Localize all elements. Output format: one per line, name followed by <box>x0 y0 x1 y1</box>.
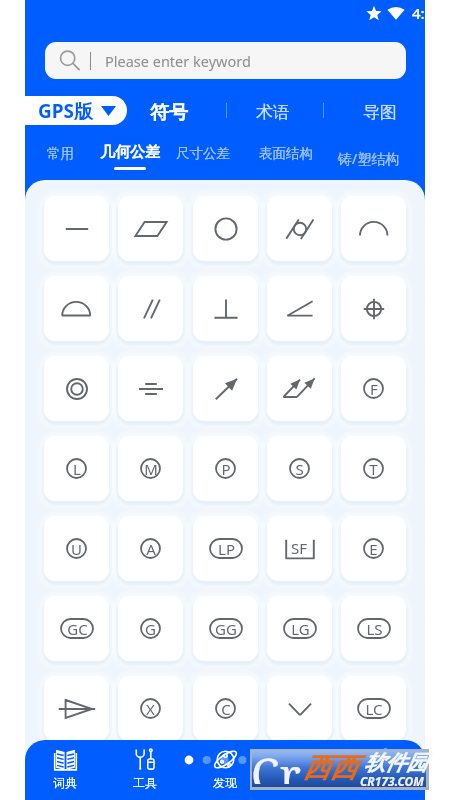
staticText: Please enter keyword <box>105 51 251 71</box>
button[interactable]: 铸/塑结构 <box>338 149 400 168</box>
button[interactable]: 符号 <box>140 96 198 130</box>
staticText: A <box>146 539 156 559</box>
button[interactable]: Concentricity <box>44 356 109 421</box>
button[interactable]: GPS版 <box>25 96 127 125</box>
button[interactable]: Parallelism <box>118 276 183 341</box>
staticText: LC <box>365 699 383 719</box>
staticText: LG <box>291 619 310 639</box>
button[interactable]: Symmetry <box>118 356 183 421</box>
staticText: 软件园 <box>364 750 427 776</box>
button[interactable]: GG modifier <box>193 596 258 661</box>
button[interactable]: A modifier <box>118 516 183 581</box>
button[interactable]: 我的 <box>345 740 425 800</box>
staticText: 常用 <box>47 145 74 162</box>
button[interactable]: Perpendicularity <box>193 276 258 341</box>
button[interactable]: E modifier <box>341 516 406 581</box>
button[interactable]: Please enter keyword <box>45 42 406 79</box>
staticText: L <box>73 459 81 479</box>
staticText: 工具 <box>133 775 157 790</box>
staticText: E <box>369 539 378 559</box>
button[interactable]: C modifier <box>193 676 258 741</box>
staticText: 仪器 <box>293 775 317 790</box>
button[interactable]: 工具 <box>105 740 185 800</box>
button[interactable]: Position <box>341 276 406 341</box>
staticText: Cr <box>251 743 301 784</box>
staticText: S <box>295 459 304 479</box>
button[interactable]: G modifier <box>118 596 183 661</box>
staticText: U <box>71 539 82 559</box>
button[interactable]: 表面结构 <box>259 145 313 162</box>
button[interactable]: Angularity <box>267 276 332 341</box>
button[interactable]: Surface profile <box>44 276 109 341</box>
staticText: 4:35 <box>412 3 425 22</box>
button[interactable]: Circular runout <box>193 356 258 421</box>
staticText: F <box>370 379 378 399</box>
button[interactable]: L modifier <box>44 436 109 501</box>
staticText: GG <box>215 619 237 639</box>
staticText: 西西 <box>303 751 357 785</box>
button[interactable]: Circularity <box>193 196 258 261</box>
staticText: 我的 <box>373 775 397 790</box>
staticText: G <box>145 619 156 639</box>
button[interactable]: Cylindricity <box>267 196 332 261</box>
button[interactable]: P modifier <box>193 436 258 501</box>
button[interactable]: SF modifier <box>267 516 332 581</box>
staticText: P <box>221 459 231 479</box>
button[interactable]: 发现 <box>185 740 265 800</box>
button[interactable]: GC modifier <box>44 596 109 661</box>
button[interactable]: LP modifier <box>193 516 258 581</box>
staticText: 铸/塑结构 <box>338 149 400 168</box>
button[interactable]: U modifier <box>44 516 109 581</box>
staticText: GPS版 <box>38 98 94 124</box>
staticText: LP <box>218 539 235 559</box>
button[interactable]: F modifier <box>341 356 406 421</box>
button[interactable]: 导图 <box>353 97 407 128</box>
button[interactable]: Total runout <box>267 356 332 421</box>
button[interactable]: X modifier <box>118 676 183 741</box>
button[interactable]: S modifier <box>267 436 332 501</box>
button[interactable]: M modifier <box>118 436 183 501</box>
button[interactable]: Straightness <box>44 196 109 261</box>
staticText: SF <box>291 538 308 558</box>
staticText: X <box>146 699 155 719</box>
button[interactable]: 仪器 <box>265 740 345 800</box>
button[interactable]: 几何公差 <box>100 143 160 170</box>
button[interactable]: 词典 <box>25 740 105 800</box>
button[interactable]: LG modifier <box>267 596 332 661</box>
button[interactable]: 术语 <box>246 97 300 128</box>
button[interactable]: 尺寸公差 <box>176 145 230 162</box>
staticText: LS <box>366 619 383 639</box>
button[interactable]: Line profile <box>341 196 406 261</box>
button[interactable]: LC modifier <box>341 676 406 741</box>
button[interactable]: T modifier <box>341 436 406 501</box>
staticText: 尺寸公差 <box>176 145 230 162</box>
button[interactable]: Datum target <box>44 676 109 741</box>
staticText: M <box>144 459 158 479</box>
staticText: GC <box>67 619 88 639</box>
staticText: 发现 <box>213 775 237 790</box>
staticText: T <box>369 459 378 479</box>
button[interactable]: LS modifier <box>341 596 406 661</box>
button[interactable]: Flatness <box>118 196 183 261</box>
staticText: 几何公差 <box>100 143 160 162</box>
staticText: C <box>221 699 231 719</box>
staticText: 表面结构 <box>259 145 313 162</box>
staticText: CR173.COM <box>360 773 424 789</box>
button[interactable]: Cone taper <box>267 676 332 741</box>
staticText: 词典 <box>53 775 77 790</box>
button[interactable]: 常用 <box>47 145 74 162</box>
